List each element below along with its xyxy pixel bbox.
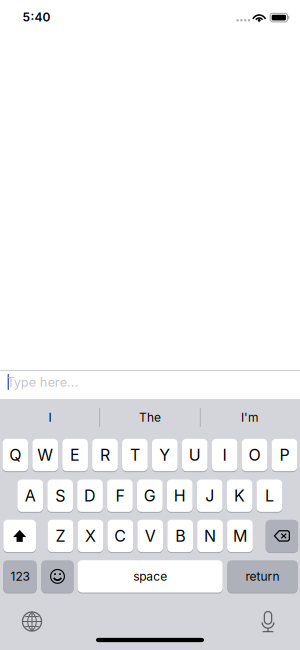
staticText: P [279, 445, 289, 465]
button[interactable]: S [47, 478, 73, 513]
staticText: J [205, 486, 214, 505]
staticText: W [37, 445, 53, 465]
button[interactable]: E [62, 438, 88, 472]
button[interactable]: I'm [200, 399, 299, 436]
button[interactable]: W [32, 438, 58, 472]
button[interactable]: Q [2, 438, 28, 472]
staticText: 123 [10, 569, 29, 584]
staticText: The [139, 410, 161, 425]
button[interactable]: Z [48, 519, 73, 553]
staticText: V [145, 526, 156, 546]
button[interactable]: B [167, 519, 193, 553]
staticText: B [175, 526, 185, 546]
button[interactable]: L [257, 478, 282, 513]
button[interactable]: C [107, 519, 133, 553]
button[interactable]: N [197, 519, 223, 553]
staticText: Z [56, 526, 66, 546]
button[interactable]: P [271, 438, 297, 472]
button[interactable]: M [227, 519, 253, 553]
button[interactable]: Shift [3, 519, 36, 553]
button[interactable]: J [197, 478, 222, 513]
staticText: S [55, 486, 65, 505]
staticText: K [234, 486, 245, 505]
button[interactable]: K [227, 478, 252, 513]
button[interactable]: G [137, 478, 163, 513]
staticText: C [114, 526, 126, 546]
staticText: E [70, 445, 80, 465]
staticText: O [248, 445, 260, 465]
button[interactable]: T [122, 438, 148, 472]
staticText: G [144, 486, 156, 505]
button[interactable]: X [78, 519, 103, 553]
staticText: H [174, 486, 186, 505]
staticText: F [115, 486, 124, 505]
staticText: R [100, 445, 110, 465]
button[interactable]: O [242, 438, 267, 472]
staticText: I'm [241, 410, 259, 425]
button[interactable]: I [0, 399, 99, 436]
staticText: U [189, 445, 201, 465]
staticText: space [133, 569, 167, 584]
button[interactable]: R [92, 438, 118, 472]
button[interactable]: Numbers and symbols [3, 559, 37, 593]
button[interactable]: Y [152, 438, 178, 472]
staticText: Y [159, 445, 170, 465]
staticText: M [233, 526, 247, 546]
button[interactable]: V [137, 519, 163, 553]
button[interactable]: I [212, 438, 237, 472]
button[interactable]: Dictation [248, 606, 288, 636]
button[interactable]: Next keyboard [12, 606, 52, 636]
button[interactable]: A [17, 478, 43, 513]
button[interactable]: space [78, 559, 223, 593]
staticText: 5:40 [22, 10, 50, 24]
button[interactable]: U [182, 438, 207, 472]
button[interactable]: Delete [266, 519, 298, 553]
button[interactable]: D [77, 478, 103, 513]
staticText: A [25, 486, 36, 505]
staticText: Q [9, 445, 21, 465]
staticText: I [223, 445, 227, 465]
staticText: D [84, 486, 96, 505]
staticText: L [265, 486, 274, 505]
button[interactable]: Emoji [41, 559, 74, 593]
button[interactable]: The [100, 399, 199, 436]
staticText: return [245, 569, 279, 584]
button[interactable]: H [167, 478, 193, 513]
staticText: Type here... [7, 374, 79, 390]
staticText: T [130, 445, 140, 465]
button[interactable]: F [107, 478, 133, 513]
staticText: X [85, 526, 96, 546]
button[interactable]: return [227, 559, 298, 593]
staticText: N [204, 526, 216, 546]
staticText: I [48, 410, 51, 425]
